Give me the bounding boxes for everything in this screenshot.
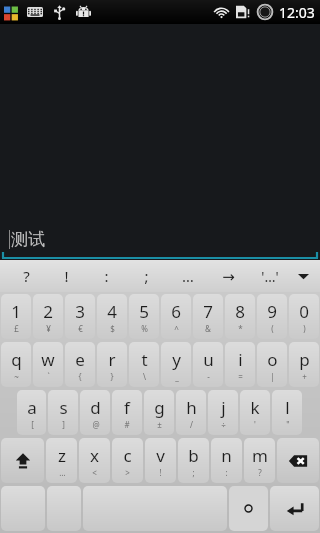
button[interactable]: 测试 xyxy=(0,216,320,260)
button[interactable]: o xyxy=(257,342,287,387)
button[interactable]: d xyxy=(80,390,110,435)
staticText: ~ xyxy=(14,371,19,382)
button[interactable]: 0 xyxy=(289,294,319,339)
button[interactable]: Backspace xyxy=(277,438,319,483)
button[interactable]: s xyxy=(48,390,78,435)
staticText: ( xyxy=(271,323,274,334)
button[interactable]: n xyxy=(211,438,242,483)
button[interactable]: v xyxy=(145,438,176,483)
button[interactable]: Enter xyxy=(270,486,319,531)
button[interactable]: ; xyxy=(126,260,167,292)
button[interactable]: More suggestions xyxy=(290,260,316,292)
button[interactable]: Language xyxy=(47,486,81,531)
button[interactable]: Space xyxy=(83,486,227,531)
staticText: f xyxy=(124,396,130,419)
button[interactable]: Shift xyxy=(1,438,44,483)
staticText: r xyxy=(108,348,116,371)
button[interactable]: k xyxy=(240,390,270,435)
staticText: '…' xyxy=(261,267,279,286)
button[interactable]: z xyxy=(46,438,77,483)
staticText: 8 xyxy=(235,300,245,323)
button[interactable]: r xyxy=(97,342,127,387)
staticText: : xyxy=(225,467,228,478)
staticText: = xyxy=(238,371,243,382)
staticText: # xyxy=(124,419,130,430)
staticText: k xyxy=(250,396,260,419)
button[interactable]: e xyxy=(65,342,95,387)
staticText: > xyxy=(125,467,130,478)
button[interactable]: ! xyxy=(46,260,86,292)
button[interactable]: f xyxy=(112,390,142,435)
button[interactable]: m xyxy=(244,438,275,483)
button[interactable]: g xyxy=(144,390,174,435)
staticText: 5 xyxy=(139,300,149,323)
button[interactable]: 8 xyxy=(225,294,255,339)
staticText: ! xyxy=(64,266,69,286)
staticText: £ xyxy=(14,323,19,334)
button[interactable]: 9 xyxy=(257,294,287,339)
staticText: } xyxy=(110,371,114,382)
staticText: 6 xyxy=(171,300,181,323)
staticText: < xyxy=(92,467,97,478)
staticText: … xyxy=(182,266,194,286)
button[interactable]: i xyxy=(225,342,255,387)
staticText: i xyxy=(238,348,243,371)
button[interactable]: 1 xyxy=(1,294,31,339)
staticText: { xyxy=(78,371,82,382)
staticText: m xyxy=(252,444,268,467)
button[interactable]: y xyxy=(161,342,191,387)
staticText: 9 xyxy=(267,300,277,323)
button[interactable]: l xyxy=(272,390,302,435)
staticText: b xyxy=(188,444,199,467)
button[interactable]: t xyxy=(129,342,159,387)
staticText: u xyxy=(203,348,214,371)
staticText: z xyxy=(58,444,66,467)
button[interactable]: p xyxy=(289,342,319,387)
button[interactable]: h xyxy=(176,390,206,435)
button[interactable]: x xyxy=(79,438,110,483)
staticText: g xyxy=(154,396,165,419)
staticText: ; xyxy=(192,467,195,478)
staticText: c xyxy=(123,444,132,467)
button[interactable]: ? xyxy=(6,260,46,292)
button[interactable]: 6 xyxy=(161,294,191,339)
button[interactable]: 5 xyxy=(129,294,159,339)
staticText: ` xyxy=(47,371,50,382)
staticText: ÷ xyxy=(221,419,226,430)
button[interactable]: … xyxy=(167,260,208,292)
staticText: / xyxy=(190,419,193,430)
button[interactable]: b xyxy=(178,438,209,483)
staticText: " xyxy=(286,419,290,430)
staticText: 1 xyxy=(11,300,21,323)
staticText: ] xyxy=(62,419,65,430)
button[interactable]: Period xyxy=(229,486,268,531)
staticText: l xyxy=(285,396,290,419)
staticText: % xyxy=(141,323,148,334)
staticText: : xyxy=(104,266,109,286)
staticText: 7 xyxy=(203,300,213,323)
staticText: → xyxy=(222,268,235,285)
button[interactable]: 7 xyxy=(193,294,223,339)
staticText: ? xyxy=(258,467,262,478)
button[interactable]: u xyxy=(193,342,223,387)
staticText: + xyxy=(302,371,307,382)
staticText: s xyxy=(59,396,68,419)
staticText: | xyxy=(270,371,275,382)
staticText: j xyxy=(221,396,226,419)
button[interactable]: Symbols xyxy=(1,486,45,531)
button[interactable]: : xyxy=(86,260,126,292)
button[interactable]: 4 xyxy=(97,294,127,339)
button[interactable]: a xyxy=(17,390,46,435)
button[interactable]: c xyxy=(112,438,143,483)
button[interactable]: w xyxy=(33,342,63,387)
button[interactable]: → xyxy=(208,260,249,292)
button[interactable]: j xyxy=(208,390,238,435)
button[interactable]: '…' xyxy=(249,260,290,292)
staticText: p xyxy=(299,348,310,371)
staticText: v xyxy=(156,444,165,467)
staticText: ' xyxy=(254,419,256,430)
staticText: _ xyxy=(175,371,179,382)
button[interactable]: 3 xyxy=(65,294,95,339)
button[interactable]: 2 xyxy=(33,294,63,339)
button[interactable]: q xyxy=(1,342,31,387)
